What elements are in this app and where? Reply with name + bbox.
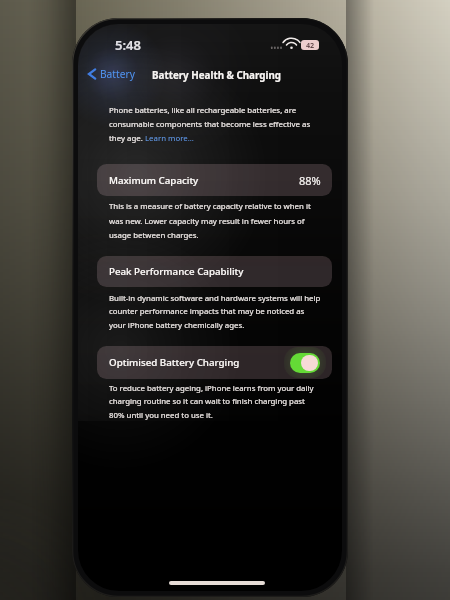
staticText: Built-in dynamic software and hardware s…	[109, 293, 321, 304]
staticText: Optimised Battery Charging	[109, 356, 240, 369]
staticText: 88%	[299, 173, 321, 188]
staticText: Peak Performance Capability	[109, 265, 244, 278]
button[interactable]: Peak Performance Capability	[97, 256, 332, 287]
staticText: To reduce battery ageing, iPhone learns …	[109, 383, 314, 394]
button[interactable]: Maximum Capacity	[97, 164, 332, 196]
staticText: Maximum Capacity	[109, 174, 199, 187]
button[interactable]: Optimised Battery Charging	[290, 353, 320, 373]
staticText: they age.	[109, 133, 145, 144]
staticText: your iPhone battery chemically ages.	[109, 320, 245, 331]
button[interactable]: Battery	[88, 67, 135, 81]
staticText: consumable components that become less e…	[109, 119, 311, 130]
staticText: Battery Health & Charging	[152, 69, 281, 82]
staticText: charging routine so it can wait to finis…	[109, 396, 305, 407]
staticText: 5:48	[115, 36, 141, 54]
staticText: was new. Lower capacity may result in fe…	[109, 216, 305, 227]
staticText: usage between charges.	[109, 230, 199, 241]
staticText: This is a measure of battery capacity re…	[109, 201, 311, 212]
button[interactable]: Optimised Battery Charging	[97, 346, 332, 379]
staticText: counter performance impacts that may be …	[109, 306, 305, 317]
button[interactable]: Learn more...	[145, 133, 194, 144]
staticText: Learn more...	[145, 133, 194, 144]
staticText: Battery	[100, 67, 135, 81]
staticText: 80% until you need to use it.	[109, 410, 213, 421]
staticText: Phone batteries, like all rechargeable b…	[109, 105, 297, 116]
staticText: 42	[306, 40, 315, 50]
